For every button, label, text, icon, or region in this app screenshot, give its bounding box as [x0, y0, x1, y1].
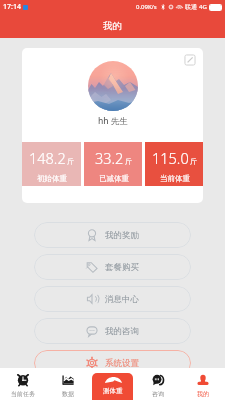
staticText: 初始体重: [37, 174, 67, 183]
staticText: 当前任务: [11, 390, 35, 398]
staticText: 斤: [67, 157, 74, 166]
staticText: 已减体重: [99, 174, 129, 183]
staticText: 消息中心: [105, 294, 139, 305]
staticText: 4G: [199, 3, 207, 11]
button[interactable]: 我的咨询: [34, 318, 191, 344]
staticText: 数据: [62, 390, 74, 398]
staticText: 148.2: [29, 148, 66, 168]
staticText: 我的: [197, 390, 209, 398]
button[interactable]: 测体重: [92, 373, 133, 400]
staticText: 115.0: [152, 148, 189, 168]
staticText: hh 先生: [98, 115, 128, 127]
staticText: 测体重: [103, 387, 123, 395]
staticText: 联通: [185, 3, 197, 11]
button[interactable]: 当前任务: [0, 368, 45, 400]
button[interactable]: 我的奖励: [34, 222, 191, 248]
staticText: 咨询: [152, 390, 164, 398]
button[interactable]: 我的: [180, 368, 225, 400]
button[interactable]: 套餐购买: [34, 254, 191, 280]
staticText: 我的: [103, 20, 122, 32]
button[interactable]: 数据: [45, 368, 90, 400]
button[interactable]: 咨询: [135, 368, 180, 400]
staticText: 斤: [190, 157, 197, 166]
staticText: 17:14: [3, 2, 21, 12]
button[interactable]: 系统设置: [34, 350, 191, 376]
staticText: 我的咨询: [105, 326, 139, 337]
staticText: 33.2: [95, 148, 124, 168]
staticText: 系统设置: [105, 358, 139, 369]
staticText: 套餐购买: [105, 262, 139, 273]
staticText: 我的奖励: [105, 230, 139, 241]
staticText: 0.09K/s: [136, 3, 157, 11]
staticText: 斤: [125, 157, 132, 166]
button[interactable]: 消息中心: [34, 286, 191, 312]
staticText: 当前体重: [160, 174, 190, 183]
button[interactable]: 编辑资料: [184, 54, 196, 66]
